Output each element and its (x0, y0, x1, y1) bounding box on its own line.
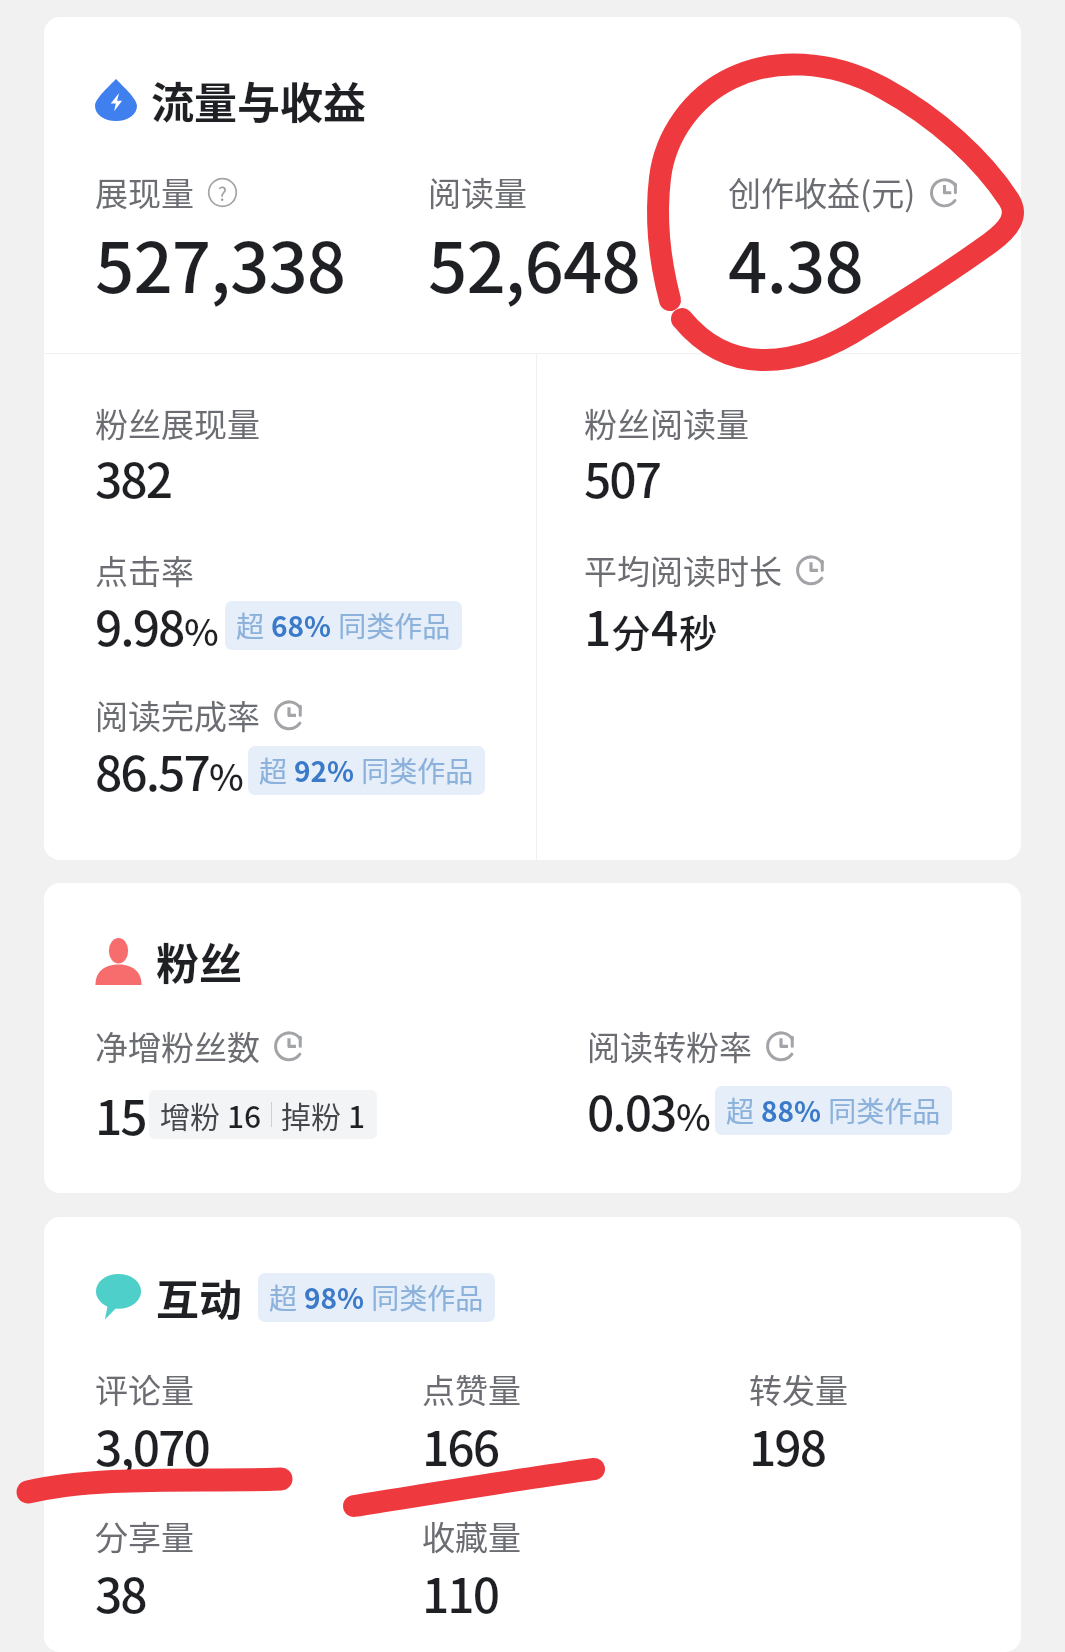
button[interactable]: 粉丝 (44, 930, 266, 992)
staticText: 507 (584, 442, 661, 512)
button[interactable]: 流量与收益 (44, 69, 390, 131)
staticText: 点击率 (95, 546, 194, 594)
staticText: 15 (95, 1079, 146, 1149)
staticText: 1 (584, 590, 612, 660)
staticText: 平均阅读时长 (584, 546, 782, 594)
staticText: 流量与收益 (151, 69, 366, 131)
staticText: 展现量 (95, 168, 194, 216)
staticText: 98% (304, 1277, 365, 1318)
button[interactable]: 互动 (44, 1217, 1021, 1652)
staticText: 4 (651, 590, 679, 660)
staticText: 16 (227, 1093, 262, 1136)
staticText: 阅读量 (428, 168, 527, 216)
staticText: 阅读转粉率 (587, 1022, 752, 1070)
staticText: 同类作品 (365, 1277, 484, 1318)
staticText: % (209, 748, 244, 802)
staticText: 创作收益(元) (728, 168, 916, 216)
staticText: % (676, 1088, 711, 1142)
staticText: 收藏量 (422, 1512, 521, 1560)
staticText: 166 (422, 1410, 499, 1480)
staticText: 粉丝展现量 (95, 399, 260, 447)
staticText: 68% (271, 605, 332, 646)
staticText: 增粉 (160, 1093, 227, 1136)
staticText: 52,648 (428, 213, 640, 313)
staticText: 同类作品 (332, 605, 451, 646)
staticText: 秒 (679, 603, 718, 658)
staticText: 超 (726, 1090, 761, 1131)
staticText: ? (218, 179, 227, 206)
staticText: 198 (749, 1410, 826, 1480)
staticText: 92% (294, 750, 355, 791)
staticText: 互动 (156, 1266, 242, 1328)
button[interactable]: 流量与收益 (44, 17, 1021, 860)
staticText: 110 (422, 1557, 499, 1627)
button[interactable]: 历史数据 (765, 1030, 797, 1062)
staticText: 3,070 (95, 1410, 209, 1480)
staticText: 点赞量 (422, 1365, 521, 1413)
staticText: % (184, 603, 219, 657)
button[interactable]: 历史数据 (929, 177, 960, 208)
button[interactable]: 互动 (44, 1266, 519, 1328)
staticText: 38 (95, 1557, 146, 1627)
staticText: 4.38 (728, 213, 863, 313)
staticText: 88% (761, 1090, 822, 1131)
staticText: 评论量 (95, 1365, 194, 1413)
button[interactable]: 历史数据 (273, 699, 305, 731)
staticText: 超 (236, 605, 271, 646)
staticText: 粉丝阅读量 (584, 399, 749, 447)
staticText: 粉丝 (156, 930, 242, 992)
staticText: 掉粉 (281, 1093, 348, 1136)
staticText: 527,338 (95, 213, 346, 313)
staticText: 超 (259, 750, 294, 791)
staticText: 86.57 (95, 735, 209, 805)
staticText: 同类作品 (822, 1090, 941, 1131)
button[interactable]: 粉丝 (44, 883, 1021, 1193)
staticText: 9.98 (95, 590, 184, 660)
button[interactable]: 历史数据 (795, 554, 827, 586)
button[interactable]: 历史数据 (273, 1030, 305, 1062)
staticText: 382 (95, 442, 172, 512)
staticText: 1 (348, 1093, 366, 1136)
staticText: 分 (612, 603, 651, 658)
staticText: 转发量 (749, 1365, 848, 1413)
staticText: 0.03 (587, 1075, 676, 1145)
button[interactable]: 说明 (207, 177, 238, 208)
staticText: 分享量 (95, 1512, 194, 1560)
staticText: 阅读完成率 (95, 691, 260, 739)
staticText: 净增粉丝数 (95, 1022, 260, 1070)
staticText: 同类作品 (355, 750, 474, 791)
staticText: 超 (269, 1277, 304, 1318)
